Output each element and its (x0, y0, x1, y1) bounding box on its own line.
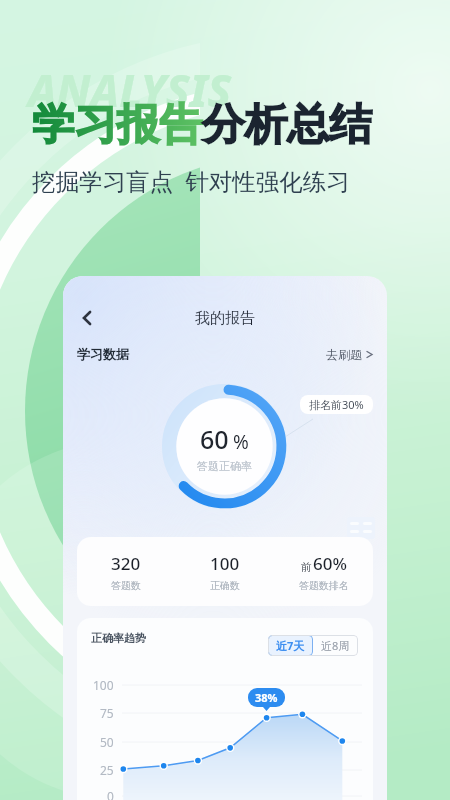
button[interactable]: 返回 (73, 304, 101, 332)
staticText: 排名前30% (309, 397, 364, 412)
staticText: 100 (93, 677, 114, 693)
staticText: ANALYSIS (28, 60, 232, 120)
staticText: 近8周 (321, 638, 350, 653)
staticText: 75 (100, 705, 114, 721)
button[interactable]: 近8周 (313, 635, 358, 656)
staticText: 学习数据 (77, 346, 129, 362)
staticText: 0 (107, 788, 114, 800)
staticText: 60 (200, 422, 229, 456)
staticText: 学习报告 (32, 98, 202, 152)
staticText: 分析总结 (202, 98, 372, 152)
staticText: 50 (100, 734, 114, 750)
staticText: 正确数 (210, 579, 240, 592)
staticText: 前 (301, 560, 312, 574)
staticText: 正确率趋势 (91, 631, 146, 645)
button[interactable]: 近7天 (268, 635, 313, 656)
button[interactable]: 去刷题 (326, 347, 373, 362)
button[interactable]: 100 (175, 552, 274, 592)
button[interactable]: 320 (77, 552, 175, 592)
staticText: 25 (100, 762, 114, 778)
staticText: 答题数排名 (299, 579, 349, 592)
staticText: 我的报告 (195, 309, 255, 328)
staticText: 100 (210, 552, 240, 575)
staticText: % (233, 429, 249, 455)
button[interactable]: 前 (274, 552, 373, 592)
staticText: 320 (111, 552, 141, 575)
staticText: 38% (255, 690, 278, 705)
staticText: 去刷题 (326, 347, 362, 362)
staticText: 挖掘学习盲点 针对性强化练习 (32, 165, 350, 197)
staticText: 答题正确率 (197, 459, 252, 473)
staticText: 近7天 (276, 638, 305, 653)
staticText: 答题数 (111, 579, 141, 592)
staticText: 60% (313, 552, 347, 575)
